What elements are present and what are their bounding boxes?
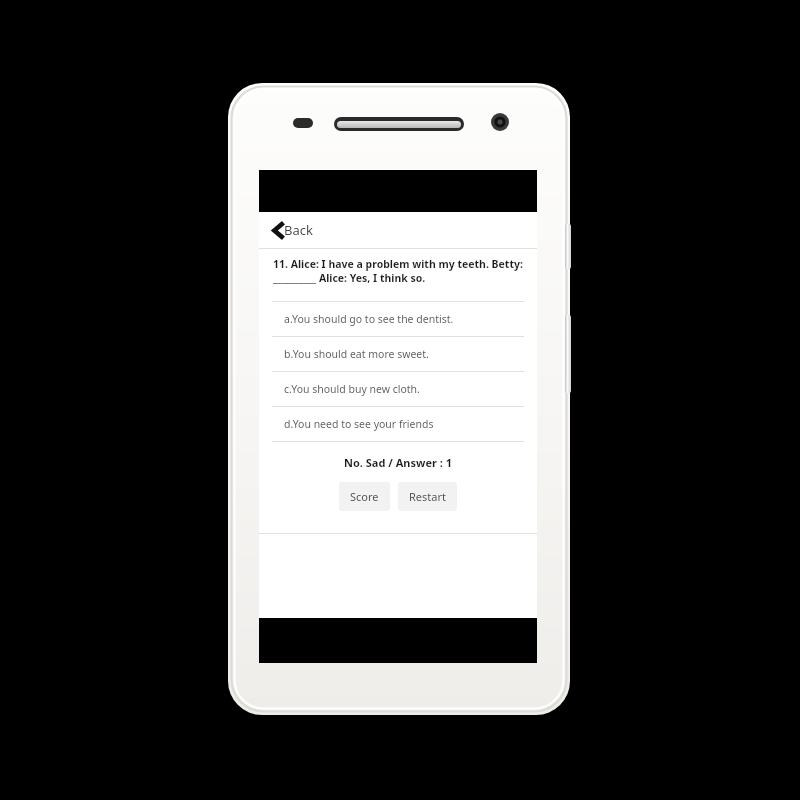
button[interactable]: Score bbox=[339, 482, 390, 511]
button[interactable]: Back bbox=[259, 212, 537, 248]
staticText: a.You should go to see the dentist. bbox=[284, 312, 454, 326]
button[interactable]: a.You should go to see the dentist. bbox=[272, 302, 524, 336]
staticText: c.You should buy new cloth. bbox=[284, 382, 420, 396]
staticText: 11. Alice: I have a problem with my teet… bbox=[273, 257, 523, 285]
staticText: Back bbox=[284, 221, 313, 239]
button[interactable]: b.You should eat more sweet. bbox=[272, 337, 524, 371]
staticText: Score bbox=[350, 489, 379, 504]
staticText: Restart bbox=[409, 489, 446, 504]
button[interactable]: Restart bbox=[398, 482, 457, 511]
staticText: No. Sad / Answer : 1 bbox=[259, 455, 537, 470]
button[interactable]: c.You should buy new cloth. bbox=[272, 372, 524, 406]
staticText: d.You need to see your friends bbox=[284, 417, 434, 431]
button[interactable]: d.You need to see your friends bbox=[272, 407, 524, 441]
staticText: b.You should eat more sweet. bbox=[284, 347, 429, 361]
